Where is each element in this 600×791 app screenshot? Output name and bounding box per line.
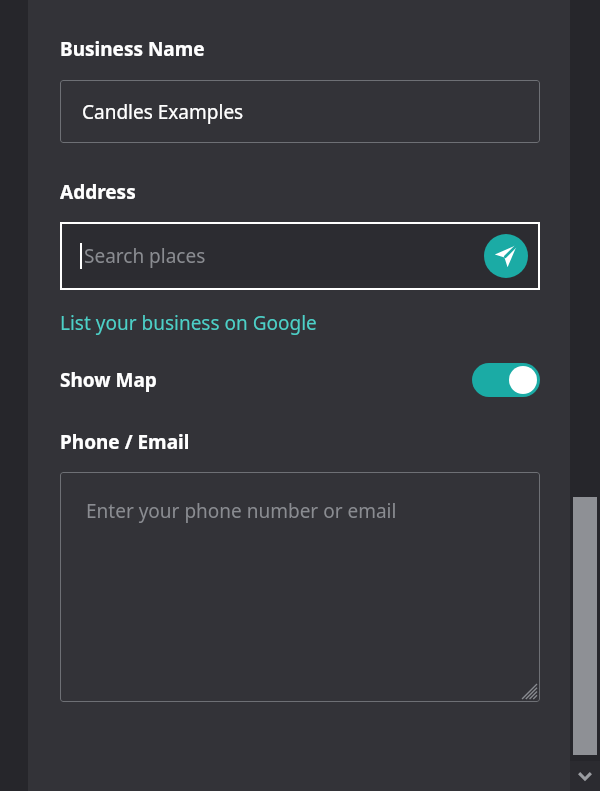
button[interactable]: Use my location	[484, 234, 528, 278]
button[interactable]: Search places	[60, 222, 540, 290]
staticText: Business Name	[60, 36, 205, 62]
button[interactable]: Scroll down	[570, 761, 600, 791]
button[interactable]: Enter your phone number or email	[60, 472, 540, 702]
staticText: Address	[60, 179, 136, 205]
staticText: Candles Examples	[82, 99, 244, 125]
button[interactable]: List your business on Google	[60, 310, 317, 336]
button[interactable]: Show Map	[60, 359, 540, 401]
staticText: List your business on Google	[60, 310, 317, 336]
staticText: Enter your phone number or email	[86, 498, 397, 524]
staticText: Search places	[84, 243, 206, 269]
staticText: Phone / Email	[60, 429, 190, 455]
button[interactable]: Candles Examples	[60, 80, 540, 143]
staticText: Show Map	[60, 367, 157, 393]
